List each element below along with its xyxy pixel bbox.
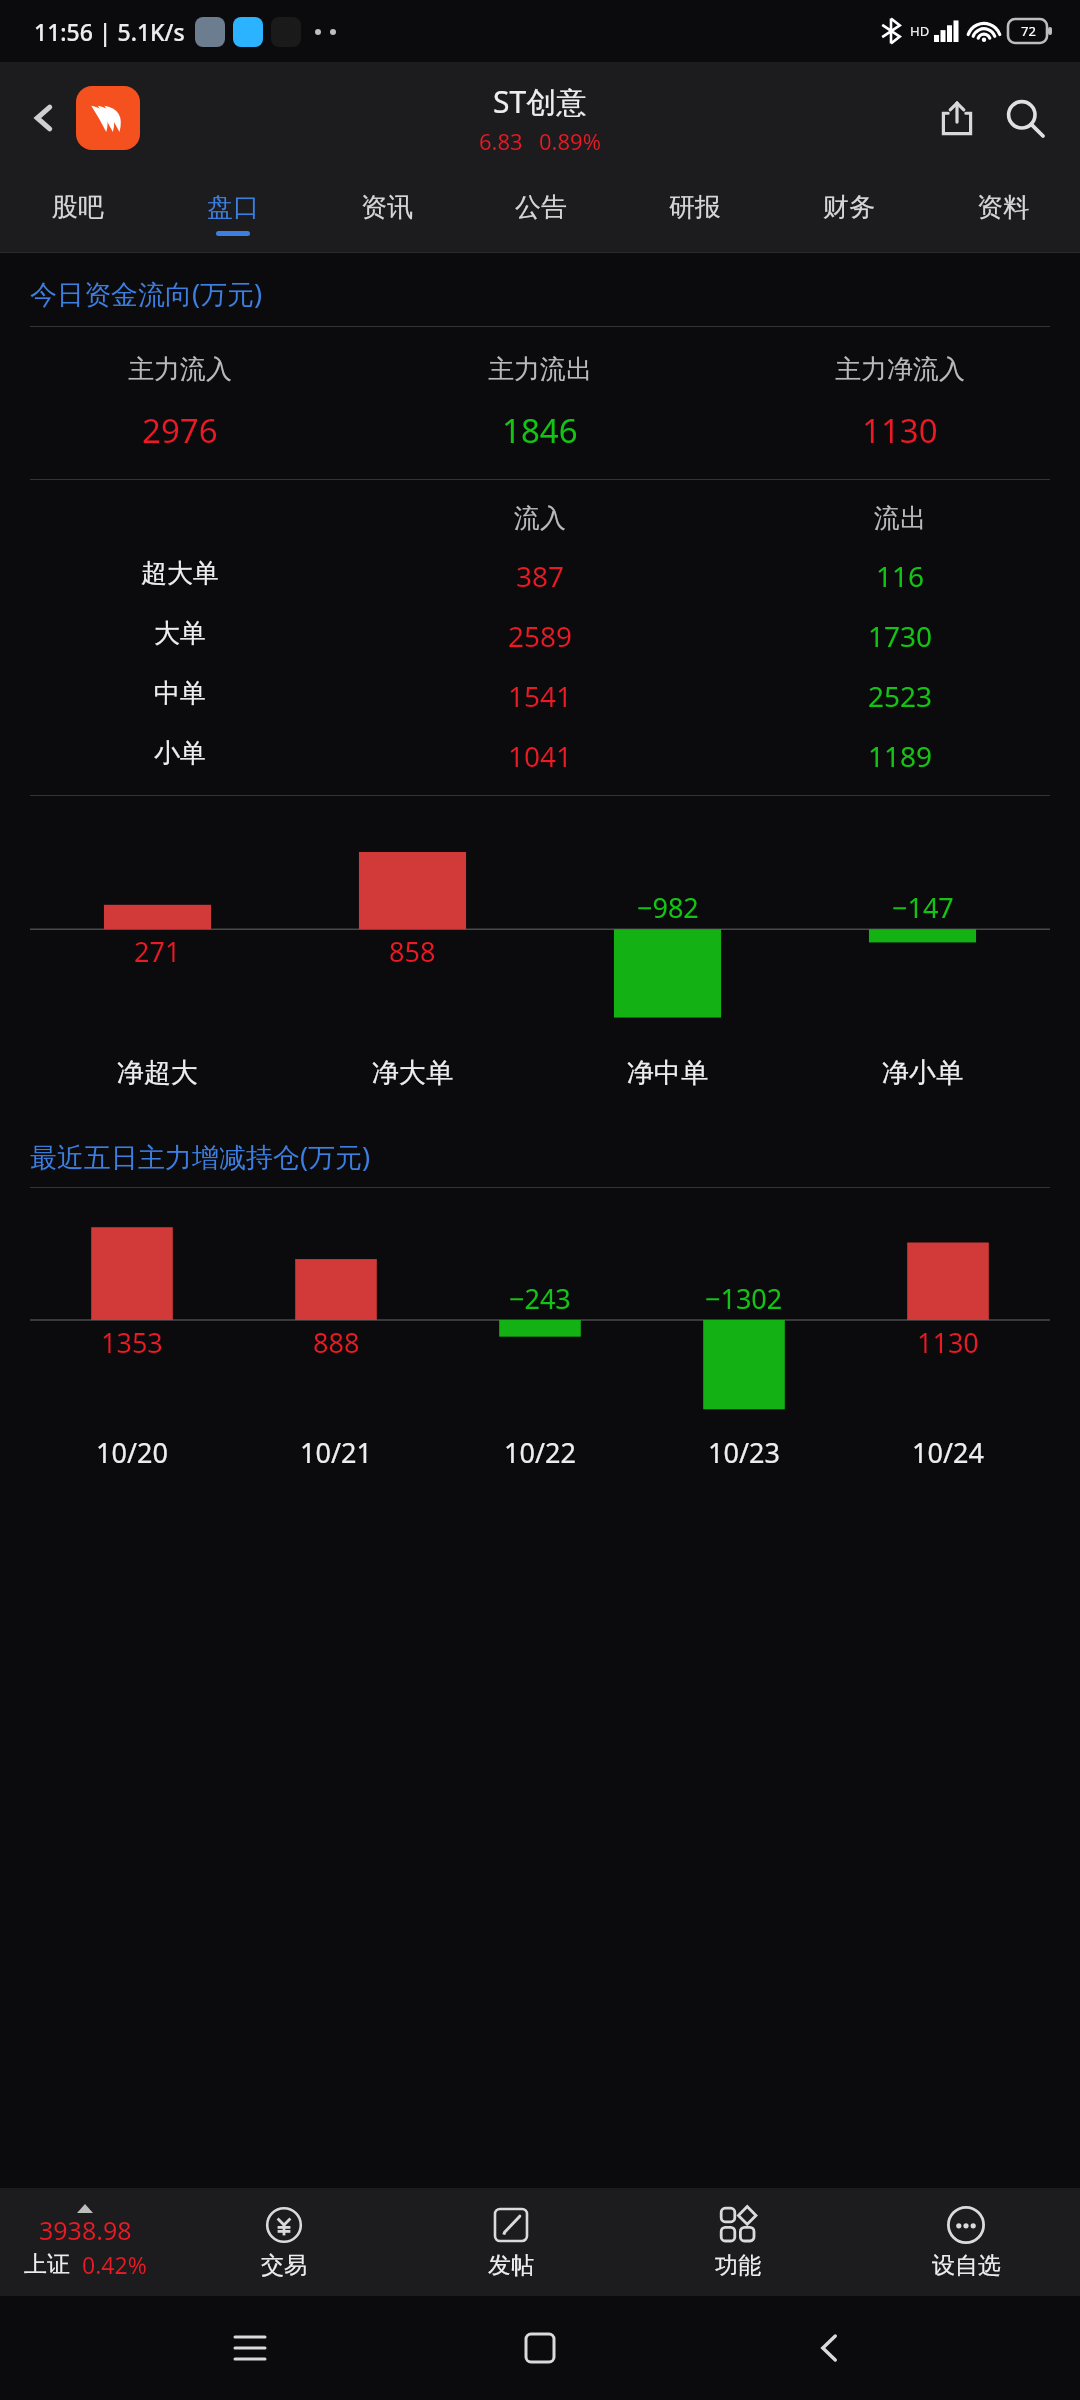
staticText: −147 <box>892 889 954 926</box>
button[interactable]: 财务 <box>772 174 926 252</box>
staticText: 2523 <box>868 677 933 715</box>
staticText: 主力流入 <box>128 353 232 386</box>
staticText: 主力净流入 <box>835 353 965 386</box>
staticText: 最近五日主力增减持仓(万元) <box>30 1138 371 1175</box>
staticText: 10/20 <box>96 1434 168 1471</box>
staticText: 2976 <box>142 408 218 453</box>
button[interactable]: Home <box>500 2308 580 2388</box>
button[interactable]: 交易 <box>170 2188 397 2296</box>
staticText: 72 <box>1021 22 1036 40</box>
staticText: 主力流出 <box>488 353 592 386</box>
staticText: 设自选 <box>932 2251 1001 2280</box>
staticText: 1189 <box>868 737 933 775</box>
staticText: 超大单 <box>141 557 219 590</box>
staticText: 交易 <box>261 2251 307 2280</box>
button[interactable]: Share <box>926 87 988 149</box>
staticText: 大单 <box>154 617 206 650</box>
staticText: 财务 <box>823 191 875 224</box>
button[interactable]: 资料 <box>926 174 1080 252</box>
staticText: 今日资金流向(万元) <box>30 275 263 312</box>
staticText: −1302 <box>705 1280 783 1317</box>
button[interactable]: 功能 <box>624 2188 852 2296</box>
staticText: 888 <box>313 1324 360 1361</box>
staticText: −982 <box>637 889 699 926</box>
staticText: 6.83 <box>479 126 523 156</box>
staticText: 1353 <box>101 1324 163 1361</box>
staticText: ST创意 <box>493 81 587 122</box>
staticText: 盘口 <box>207 191 259 224</box>
button[interactable]: 3938.98 <box>0 2188 170 2296</box>
staticText: 净中单 <box>627 1056 708 1090</box>
button[interactable]: 研报 <box>618 174 772 252</box>
staticText: 流入 <box>514 502 566 535</box>
staticText: 10/21 <box>300 1434 372 1471</box>
staticText: 研报 <box>669 191 721 224</box>
button[interactable]: 设自选 <box>852 2188 1080 2296</box>
staticText: 股吧 <box>52 191 104 224</box>
staticText: 1130 <box>862 408 938 453</box>
staticText: 10/24 <box>912 1434 984 1471</box>
staticText: 1730 <box>868 617 933 655</box>
button[interactable]: 股吧 <box>0 174 155 252</box>
button[interactable]: App logo <box>76 86 140 150</box>
staticText: 资料 <box>977 191 1029 224</box>
staticText: 10/22 <box>504 1434 576 1471</box>
staticText: 387 <box>516 557 565 595</box>
staticText: 271 <box>134 933 181 970</box>
staticText: 0.89% <box>539 126 601 156</box>
staticText: 净超大 <box>117 1056 198 1090</box>
staticText: 11:56 | 5.1K/s <box>34 16 185 47</box>
staticText: 中单 <box>154 677 206 710</box>
button[interactable]: 发帖 <box>397 2188 624 2296</box>
staticText: 1541 <box>508 677 573 715</box>
staticText: 858 <box>389 933 436 970</box>
button[interactable]: 盘口 <box>155 174 310 252</box>
button[interactable]: Back <box>16 90 72 146</box>
staticText: HD <box>910 22 930 40</box>
staticText: −243 <box>509 1280 571 1317</box>
staticText: 116 <box>876 557 925 595</box>
staticText: 上证 <box>24 2250 70 2279</box>
staticText: 发帖 <box>488 2251 534 2280</box>
staticText: 0.42% <box>82 2249 147 2280</box>
staticText: 2589 <box>508 617 573 655</box>
staticText: 3938.98 <box>39 2213 132 2247</box>
button[interactable]: Search <box>994 87 1056 149</box>
button[interactable]: 公告 <box>464 174 618 252</box>
button[interactable]: Recents <box>210 2308 290 2388</box>
staticText: 净小单 <box>882 1056 963 1090</box>
staticText: 1846 <box>502 408 578 453</box>
button[interactable]: Back <box>790 2308 870 2388</box>
staticText: 小单 <box>154 737 206 770</box>
button[interactable]: 资讯 <box>310 174 464 252</box>
staticText: 流出 <box>874 502 926 535</box>
staticText: 净大单 <box>372 1056 453 1090</box>
staticText: 公告 <box>515 191 567 224</box>
staticText: 功能 <box>715 2251 761 2280</box>
staticText: 1041 <box>508 737 573 775</box>
staticText: 10/23 <box>708 1434 780 1471</box>
staticText: 资讯 <box>361 191 413 224</box>
staticText: 1130 <box>917 1324 979 1361</box>
